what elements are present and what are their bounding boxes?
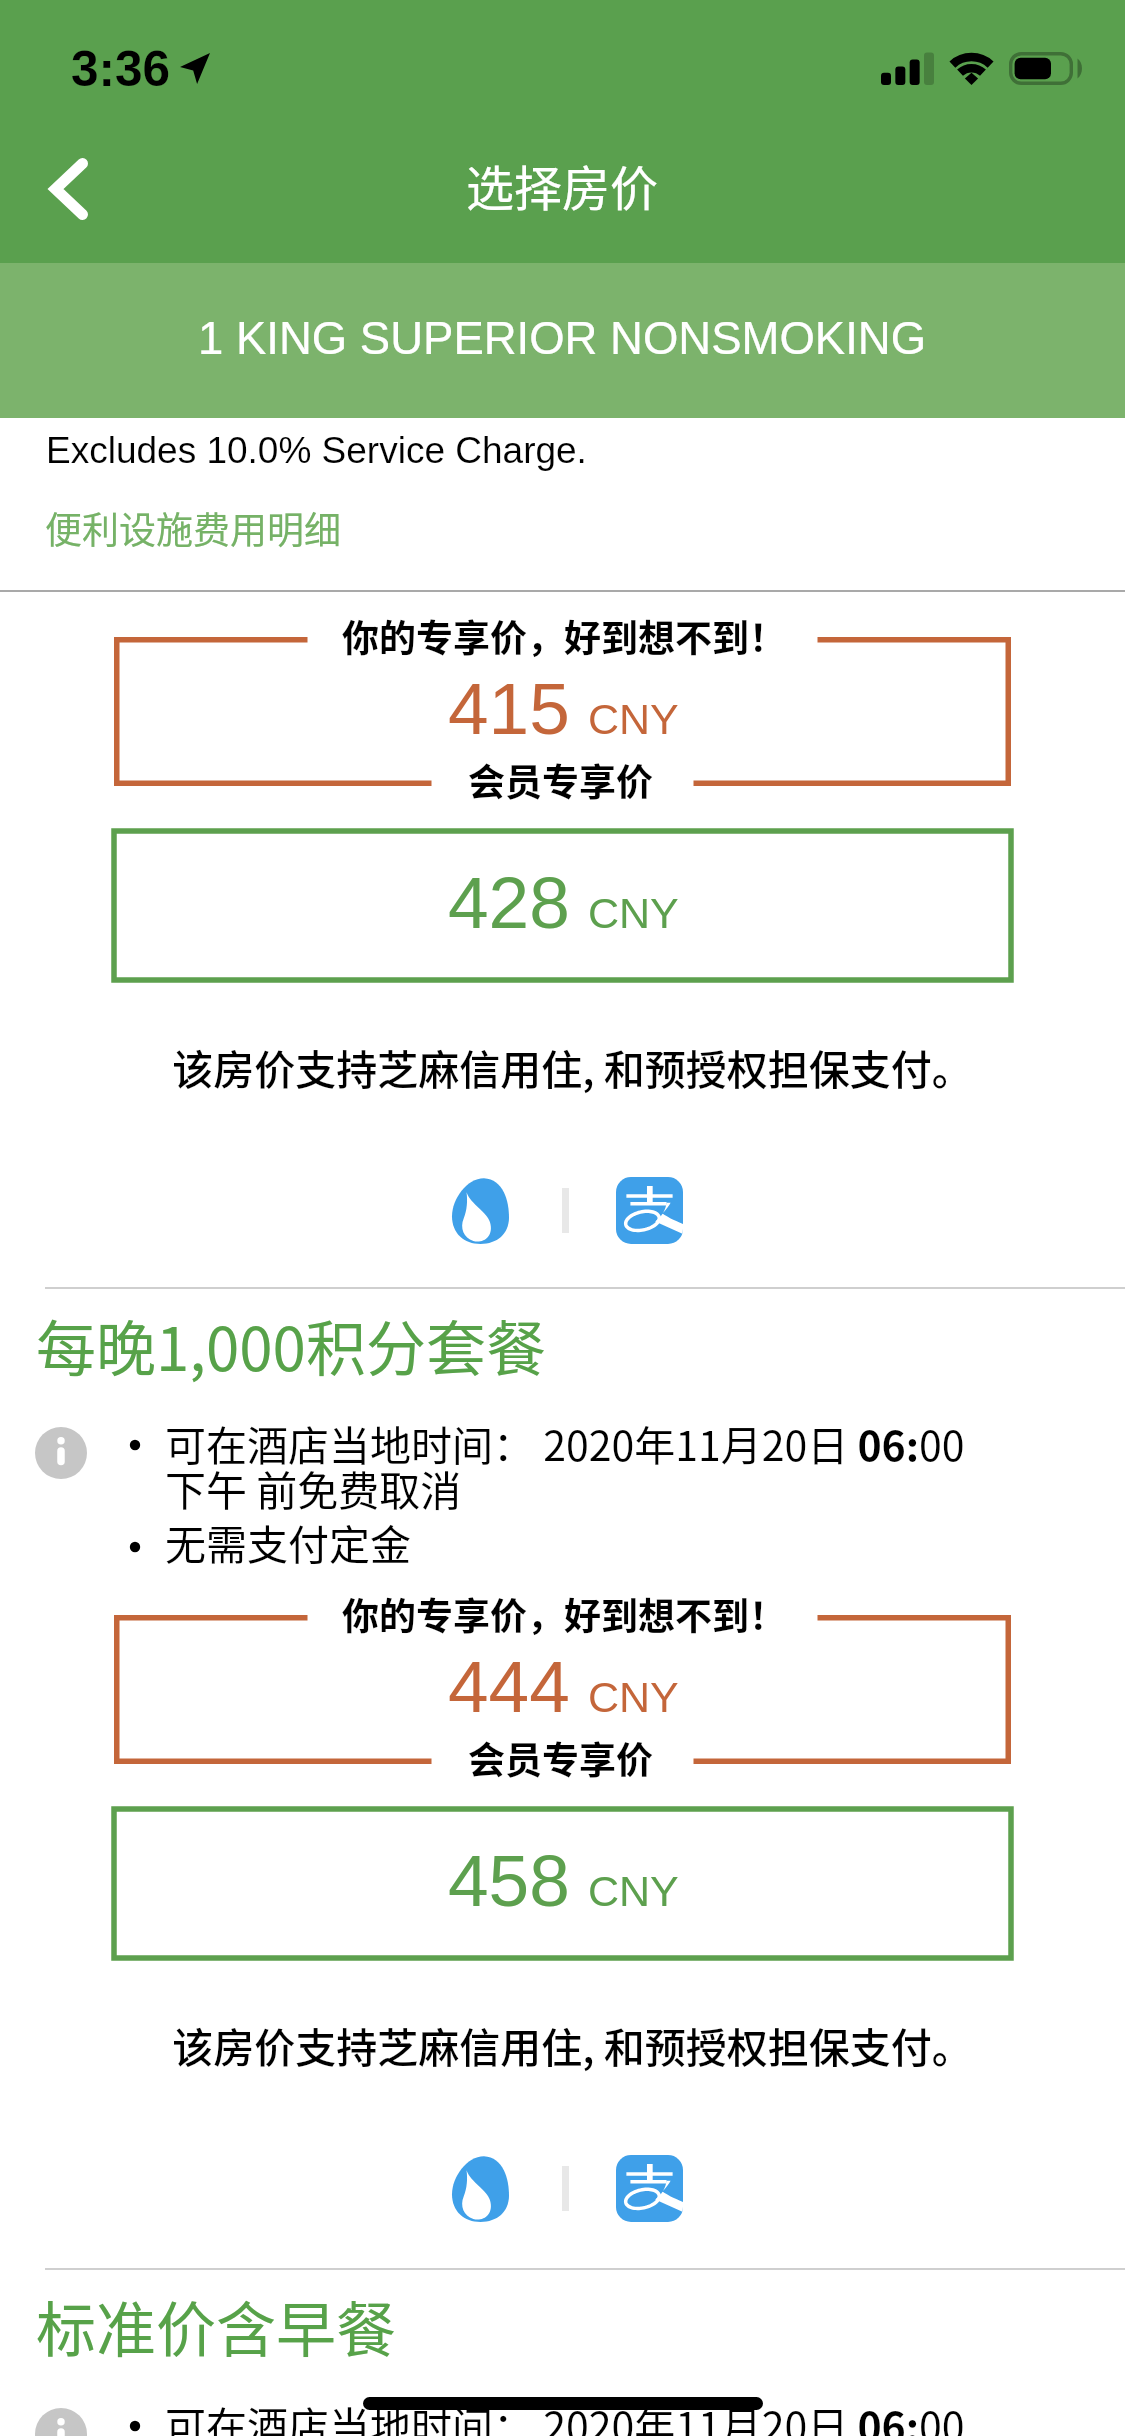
staticText: 458 xyxy=(448,1840,570,1922)
staticText: CNY xyxy=(588,889,679,937)
staticText: 你的专享价，好到想不到！ xyxy=(342,609,786,663)
staticText: 标准价含早餐 xyxy=(36,2282,396,2369)
button[interactable]: 便利设施费用明细 xyxy=(45,501,341,555)
staticText: 会员专享价 xyxy=(468,753,653,807)
staticText: 1 KING SUPERIOR NONSMOKING xyxy=(198,313,927,364)
staticText: 3:36 xyxy=(71,41,171,96)
staticText: 415 xyxy=(448,668,570,750)
staticText: 该房价支持芝麻信用住, 和预授权担保支付。 xyxy=(10,2015,1125,2074)
button[interactable]: 458 xyxy=(114,1809,1011,1958)
staticText: 428 xyxy=(448,862,570,944)
button[interactable]: Back xyxy=(14,130,124,248)
staticText: CNY xyxy=(588,1867,679,1915)
staticText: 你的专享价，好到想不到！ xyxy=(342,1587,786,1641)
staticText: 无需支付定金 xyxy=(165,1512,411,1571)
button[interactable]: 415 xyxy=(114,637,1011,786)
button[interactable]: 444 xyxy=(114,1615,1011,1764)
staticText: 每晚1,000积分套餐 xyxy=(36,1301,546,1388)
staticText: 便利设施费用明细 xyxy=(45,501,341,555)
staticText: CNY xyxy=(588,695,679,743)
staticText: 可在酒店当地时间： 2020年11月20日 06:00 下午 前免费取消 xyxy=(165,1413,965,1518)
staticText: Excludes 10.0% Service Charge. xyxy=(46,430,587,471)
staticText: CNY xyxy=(588,1673,679,1721)
staticText: 会员专享价 xyxy=(468,1731,653,1785)
staticText: 444 xyxy=(448,1646,570,1728)
staticText: 该房价支持芝麻信用住, 和预授权担保支付。 xyxy=(10,1037,1125,1096)
staticText: 选择房价 xyxy=(466,150,659,220)
staticText: 可在酒店当地时间： 2020年11月20日 06:00 下午 前免费取消 xyxy=(165,2394,965,2436)
button[interactable]: 428 xyxy=(114,831,1011,980)
